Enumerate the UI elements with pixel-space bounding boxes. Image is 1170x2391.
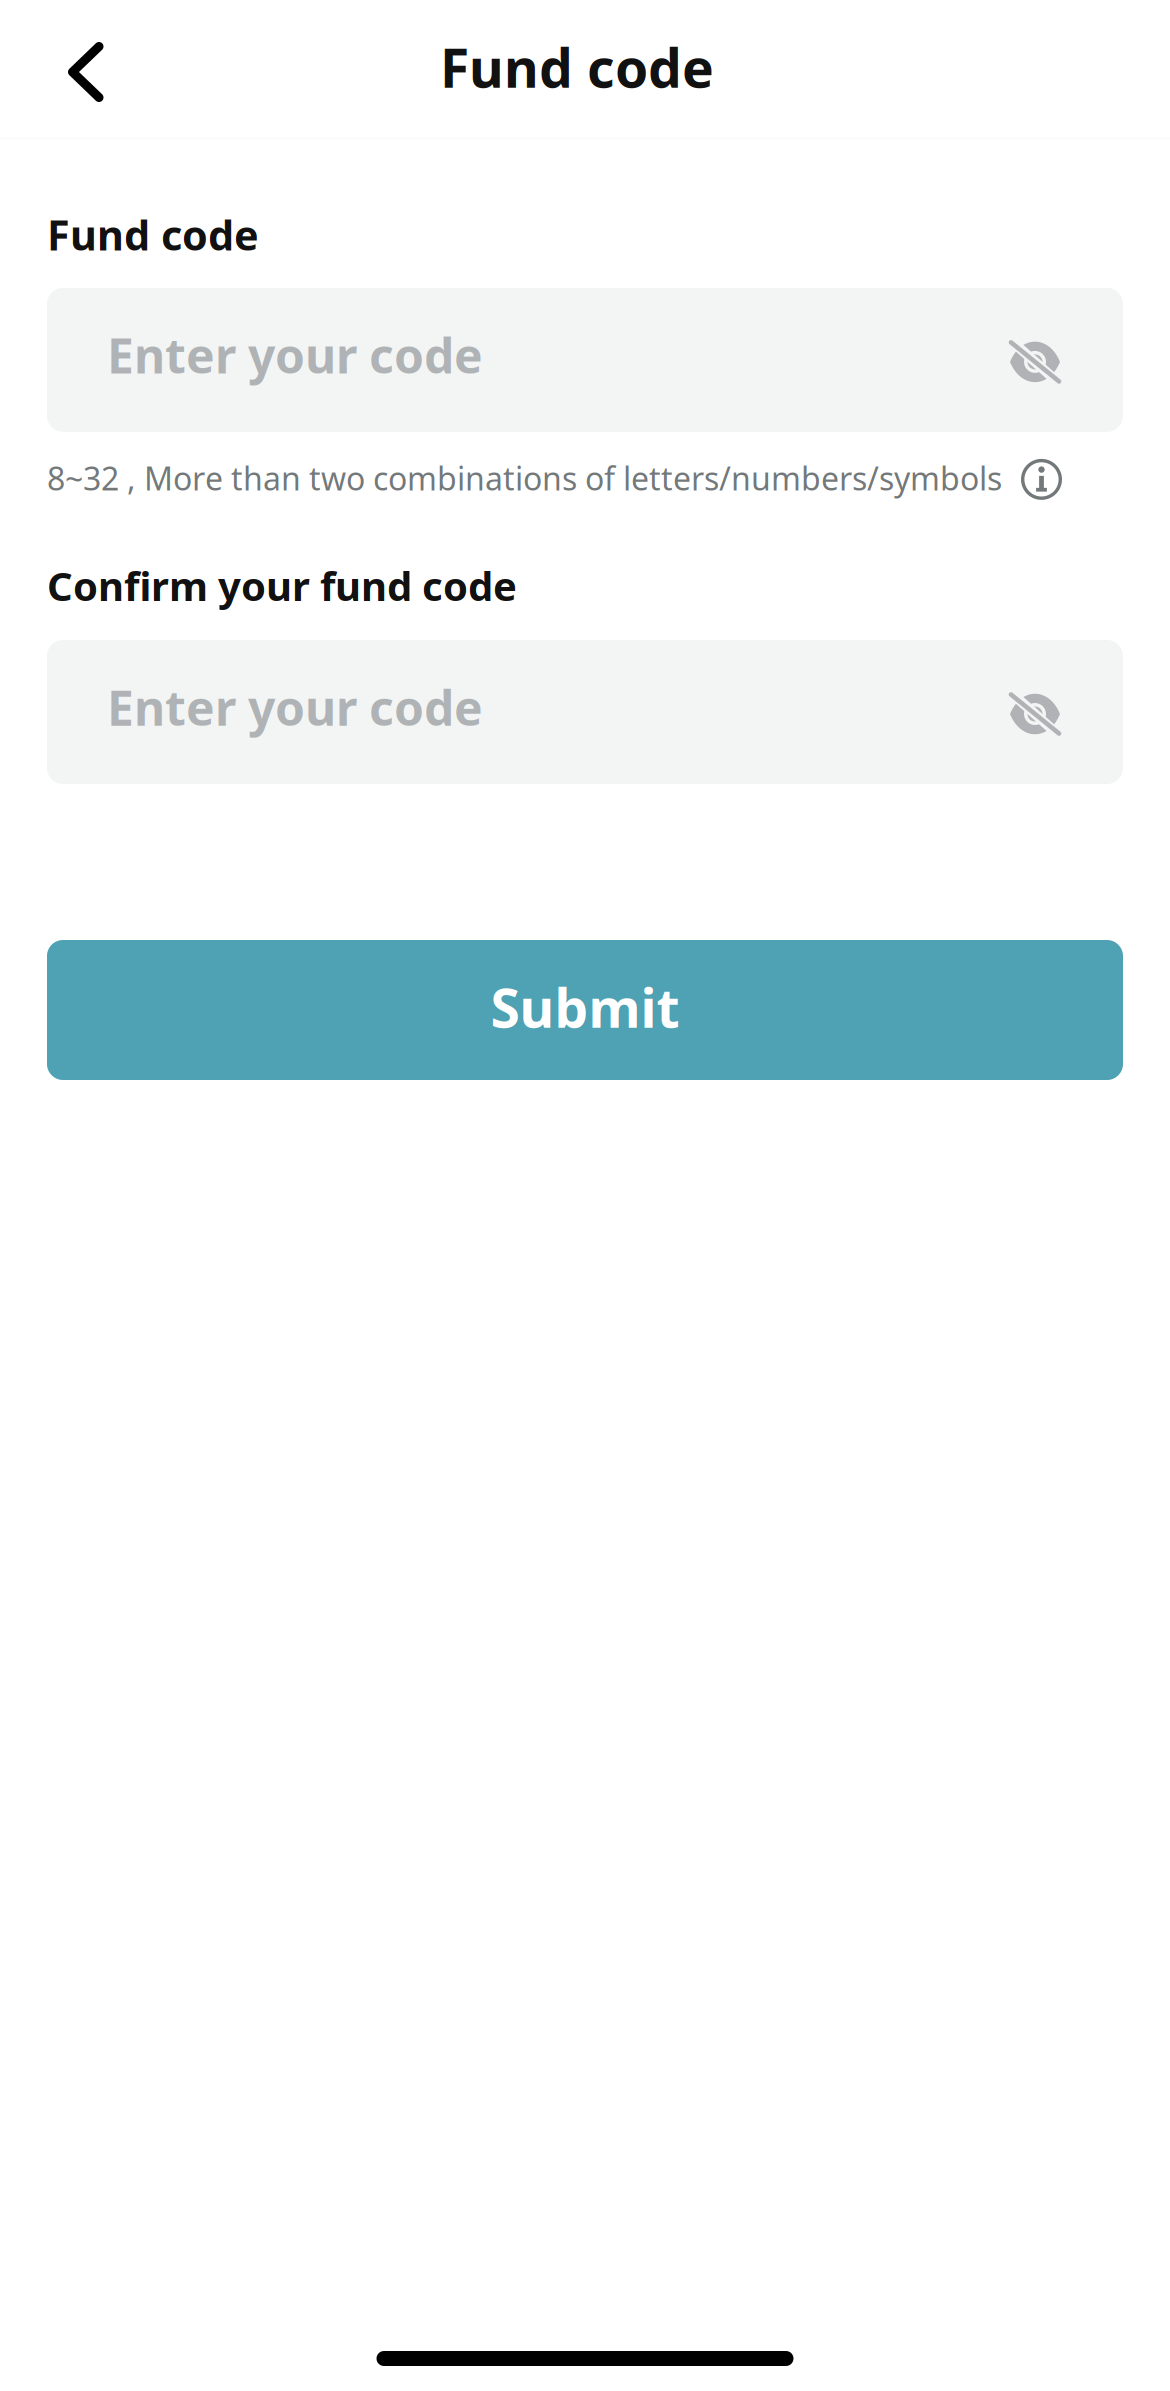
staticText: Fund code (47, 207, 259, 262)
button[interactable]: Password rules (1002, 457, 1062, 500)
button[interactable]: Show code (947, 640, 1123, 784)
staticText: Enter your code (107, 675, 483, 739)
button[interactable]: Submit (47, 940, 1123, 1080)
button[interactable]: Show code (947, 288, 1123, 432)
staticText: 8~32 , More than two combinations of let… (47, 457, 1002, 499)
staticText: Enter your code (107, 323, 483, 387)
button[interactable]: Enter your code (47, 640, 947, 784)
staticText: Fund code (440, 32, 714, 102)
staticText: Submit (490, 972, 679, 1042)
button[interactable]: Back (0, 0, 171, 141)
button[interactable]: Enter your code (47, 288, 947, 432)
staticText: Confirm your fund code (47, 559, 517, 612)
